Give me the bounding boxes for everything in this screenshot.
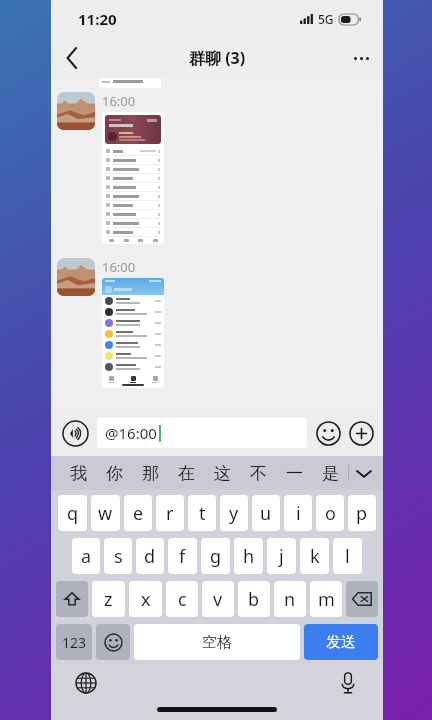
staticText: 16:00 <box>102 258 136 276</box>
button[interactable]: n <box>274 581 306 617</box>
button[interactable]: m <box>310 581 342 617</box>
staticText: r <box>166 501 174 526</box>
staticText: k <box>310 544 320 569</box>
button[interactable]: g <box>201 538 230 574</box>
staticText: d <box>144 544 156 569</box>
button[interactable]: Shared screenshot <box>102 112 164 244</box>
staticText: o <box>325 501 336 526</box>
staticText: z <box>104 587 113 612</box>
button[interactable]: i <box>284 495 312 531</box>
staticText: 16:00 <box>102 92 136 110</box>
staticText: l <box>345 544 350 569</box>
staticText: a <box>81 544 92 569</box>
button[interactable]: j <box>267 538 296 574</box>
button[interactable]: l <box>333 538 362 574</box>
button[interactable]: h <box>234 538 263 574</box>
button[interactable]: Back <box>51 38 93 78</box>
staticText: 空格 <box>202 633 232 652</box>
button[interactable]: Shared screenshot <box>102 278 164 388</box>
button[interactable]: Voice typing <box>333 668 363 698</box>
button[interactable]: k <box>300 538 329 574</box>
button[interactable]: Avatar <box>57 258 95 296</box>
button[interactable]: Shift <box>56 581 88 617</box>
staticText: 在 <box>178 463 195 484</box>
staticText: 11:20 <box>78 9 117 29</box>
staticText: h <box>243 544 255 569</box>
button[interactable]: z <box>92 581 125 617</box>
button[interactable]: Hide candidates <box>349 456 379 490</box>
staticText: y <box>229 501 239 526</box>
button[interactable]: r <box>156 495 184 531</box>
button[interactable]: Voice input <box>58 416 92 450</box>
button[interactable]: 空格 <box>134 624 300 660</box>
button[interactable]: More actions <box>346 418 376 448</box>
staticText: g <box>210 544 222 569</box>
button[interactable]: 在 <box>168 456 204 490</box>
staticText: j <box>279 544 284 569</box>
button[interactable]: Change language <box>71 668 101 698</box>
staticText: 我 <box>70 463 87 484</box>
button[interactable]: y <box>220 495 248 531</box>
button[interactable]: 123 <box>56 624 92 660</box>
staticText: f <box>179 544 186 569</box>
staticText: 那 <box>142 463 159 484</box>
staticText: w <box>98 501 113 526</box>
staticText: c <box>178 587 187 612</box>
button[interactable]: 一 <box>276 456 312 490</box>
button[interactable]: x <box>129 581 162 617</box>
staticText: m <box>318 587 335 612</box>
staticText: 是 <box>322 463 339 484</box>
button[interactable]: 这 <box>204 456 240 490</box>
staticText: @16:00 <box>105 423 157 443</box>
staticText: u <box>260 501 272 526</box>
staticText: 一 <box>286 463 303 484</box>
staticText: i <box>296 501 301 526</box>
staticText: t <box>199 501 206 526</box>
button[interactable]: e <box>124 495 152 531</box>
button[interactable]: p <box>348 495 376 531</box>
staticText: v <box>213 587 223 612</box>
button[interactable]: c <box>166 581 198 617</box>
button[interactable]: More options <box>339 38 383 78</box>
button[interactable]: 不 <box>240 456 276 490</box>
button[interactable]: b <box>238 581 270 617</box>
button[interactable]: t <box>188 495 216 531</box>
button[interactable]: u <box>252 495 280 531</box>
button[interactable]: 那 <box>132 456 168 490</box>
button[interactable]: 你 <box>96 456 132 490</box>
button[interactable]: s <box>104 538 132 574</box>
staticText: 这 <box>214 463 231 484</box>
button[interactable]: a <box>72 538 100 574</box>
button[interactable]: Emoji keyboard <box>96 624 130 660</box>
staticText: e <box>133 501 144 526</box>
staticText: x <box>141 587 151 612</box>
staticText: n <box>284 587 296 612</box>
button[interactable]: Avatar <box>57 92 95 130</box>
button[interactable]: d <box>136 538 164 574</box>
staticText: 发送 <box>326 633 356 652</box>
button[interactable]: Emoji <box>313 418 343 448</box>
button[interactable]: v <box>202 581 234 617</box>
button[interactable]: 我 <box>61 456 96 490</box>
button[interactable]: w <box>91 495 120 531</box>
button[interactable]: Backspace <box>346 581 378 617</box>
button[interactable]: f <box>168 538 197 574</box>
staticText: 不 <box>250 463 267 484</box>
button[interactable]: 发送 <box>304 624 378 660</box>
staticText: 5G <box>318 11 334 27</box>
staticText: 123 <box>62 633 87 652</box>
staticText: 你 <box>106 463 123 484</box>
button[interactable]: 是 <box>312 456 348 490</box>
staticText: b <box>248 587 260 612</box>
button[interactable]: q <box>58 495 87 531</box>
staticText: q <box>67 501 79 526</box>
staticText: p <box>356 501 368 526</box>
staticText: 群聊 (3) <box>189 47 246 69</box>
button[interactable]: o <box>316 495 344 531</box>
staticText: s <box>114 544 123 569</box>
button[interactable]: @16:00 <box>97 418 307 448</box>
